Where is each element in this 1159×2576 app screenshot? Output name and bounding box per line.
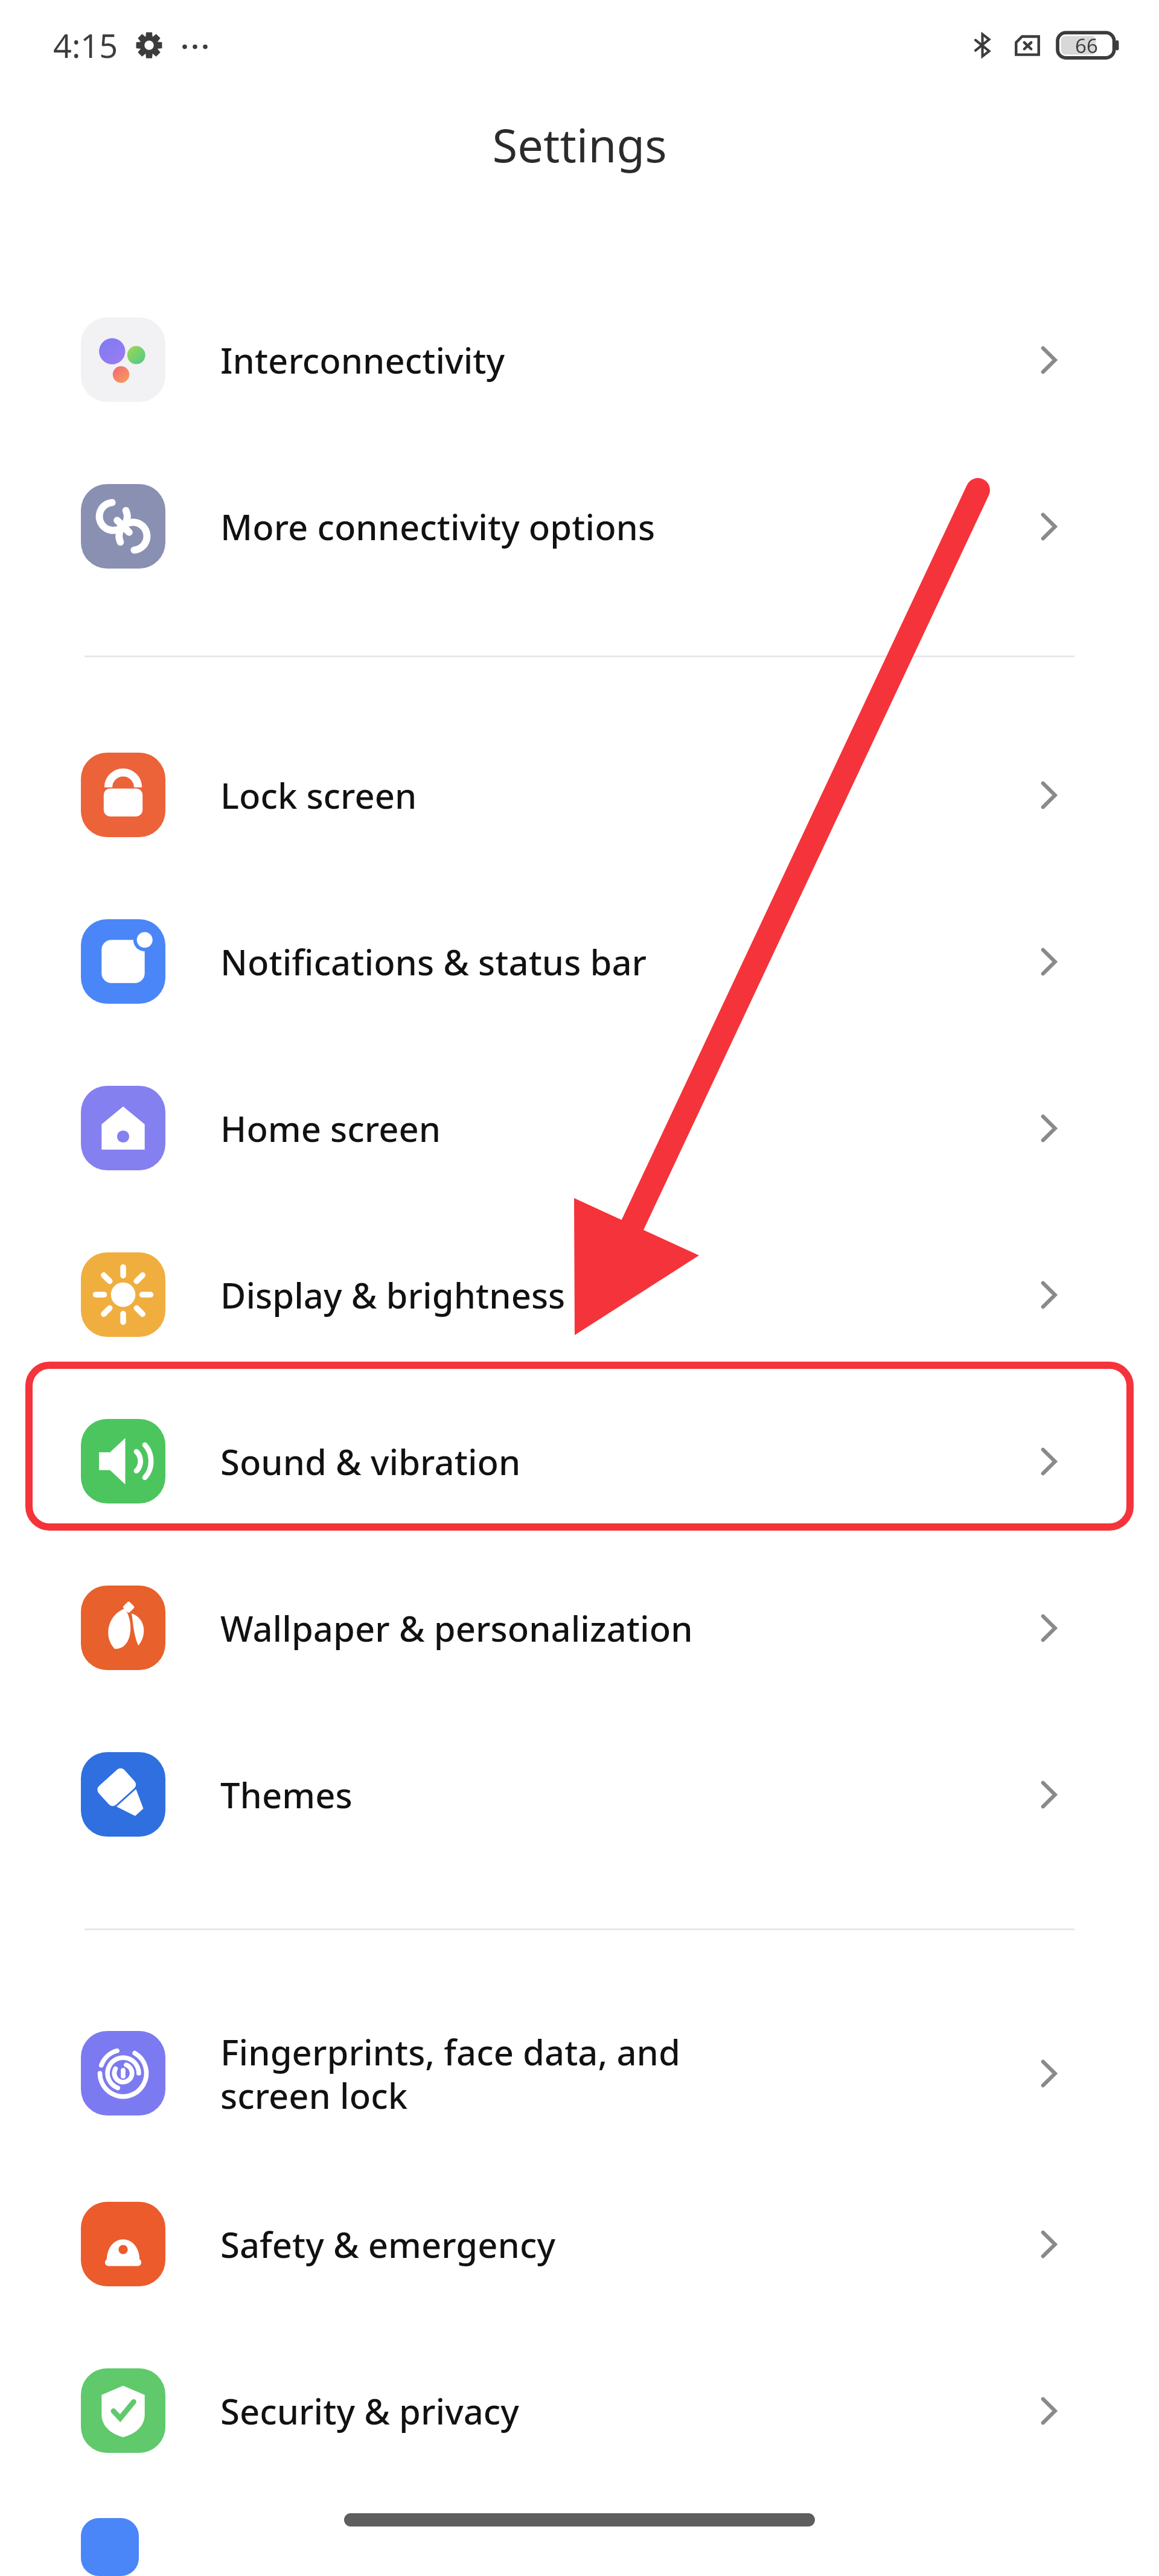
button[interactable]: More connectivity options	[0, 443, 1159, 610]
button[interactable]: Security & privacy	[0, 2327, 1159, 2494]
button[interactable]: Fingerprints, face data, and screen lock	[0, 1986, 1159, 2161]
button[interactable]: Sound & vibration	[0, 1378, 1159, 1545]
button[interactable]: Notifications & status bar	[0, 878, 1159, 1045]
button[interactable]: Home screen	[0, 1045, 1159, 1211]
staticText: Safety & emergency	[220, 2221, 960, 2268]
button[interactable]	[0, 2518, 1159, 2576]
staticText: Sound & vibration	[220, 1438, 960, 1485]
button[interactable]: Display & brightness	[0, 1211, 1159, 1378]
staticText: Settings	[492, 113, 667, 176]
staticText: Display & brightness	[220, 1271, 960, 1319]
staticText: 66	[1075, 32, 1098, 59]
button[interactable]: Lock screen	[0, 712, 1159, 878]
staticText: 4:15	[53, 23, 118, 68]
staticText: Fingerprints, face data, and screen lock	[220, 2028, 960, 2119]
staticText: Security & privacy	[220, 2387, 960, 2435]
staticText: Interconnectivity	[220, 336, 960, 384]
button[interactable]: Safety & emergency	[0, 2161, 1159, 2327]
button[interactable]: Wallpaper & personalization	[0, 1545, 1159, 1711]
staticText: Wallpaper & personalization	[220, 1604, 960, 1652]
staticText: Lock screen	[220, 771, 960, 819]
staticText: Notifications & status bar	[220, 938, 960, 986]
button[interactable]: Themes	[0, 1711, 1159, 1878]
staticText: More connectivity options	[220, 503, 960, 550]
staticText: Themes	[220, 1771, 960, 1819]
button[interactable]: Interconnectivity	[0, 276, 1159, 443]
staticText: Home screen	[220, 1105, 960, 1152]
